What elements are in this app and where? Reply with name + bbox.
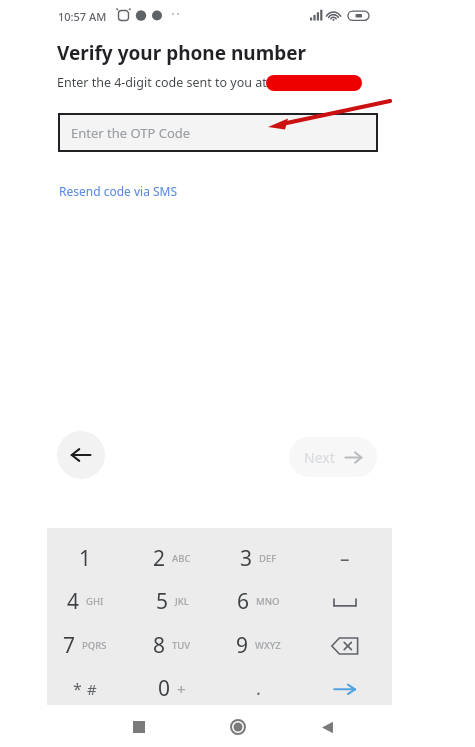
- button[interactable]: 8: [129, 624, 215, 667]
- staticText: WXYZ: [255, 639, 281, 652]
- button[interactable]: Back: [57, 431, 105, 479]
- button[interactable]: Home: [226, 715, 250, 739]
- button[interactable]: Period: [215, 667, 301, 710]
- staticText: TUV: [172, 639, 191, 652]
- button[interactable]: Recent apps: [128, 716, 150, 738]
- button[interactable]: 4: [42, 580, 128, 623]
- staticText: PQRS: [82, 639, 107, 652]
- staticText: Next: [304, 448, 335, 467]
- staticText: MNO: [256, 595, 280, 608]
- button[interactable]: Resend code via SMS: [57, 180, 180, 202]
- button[interactable]: 5: [129, 580, 215, 623]
- staticText: –: [340, 546, 350, 572]
- button[interactable]: Back: [316, 716, 338, 738]
- staticText: Enter the 4-digit code sent to you at: [57, 74, 267, 91]
- staticText: 10:57 AM: [58, 9, 107, 24]
- staticText: +: [177, 679, 186, 699]
- button[interactable]: Space: [302, 580, 388, 623]
- button[interactable]: Enter: [302, 667, 388, 710]
- staticText: *: [73, 678, 82, 700]
- staticText: DEF: [259, 552, 277, 565]
- staticText: GHI: [86, 595, 104, 608]
- staticText: 0: [158, 674, 171, 703]
- staticText: #: [87, 679, 97, 699]
- staticText: 7: [63, 631, 76, 660]
- staticText: 8: [153, 631, 166, 660]
- button[interactable]: Backspace: [302, 624, 388, 667]
- staticText: Enter the OTP Code: [71, 124, 191, 142]
- button[interactable]: 0: [129, 667, 215, 710]
- button[interactable]: Dash: [302, 537, 388, 580]
- staticText: 1: [79, 544, 92, 573]
- staticText: Verify your phone number: [57, 40, 307, 66]
- staticText: JKL: [175, 595, 189, 608]
- button[interactable]: 3: [215, 537, 301, 580]
- staticText: .: [256, 676, 261, 701]
- staticText: Resend code via SMS: [59, 183, 178, 199]
- button[interactable]: 9: [215, 624, 301, 667]
- button[interactable]: Enter the OTP Code: [58, 113, 378, 152]
- button[interactable]: Next: [289, 437, 377, 477]
- staticText: ABC: [172, 552, 191, 565]
- button[interactable]: Star and hash: [42, 667, 128, 710]
- staticText: 5: [156, 587, 169, 616]
- staticText: 6: [237, 587, 250, 616]
- button[interactable]: 1: [42, 537, 128, 580]
- staticText: 3: [240, 544, 253, 573]
- button[interactable]: 6: [215, 580, 301, 623]
- staticText: 4: [67, 587, 80, 616]
- staticText: 2: [153, 544, 166, 573]
- button[interactable]: 7: [42, 624, 128, 667]
- staticText: 9: [236, 631, 249, 660]
- button[interactable]: 2: [129, 537, 215, 580]
